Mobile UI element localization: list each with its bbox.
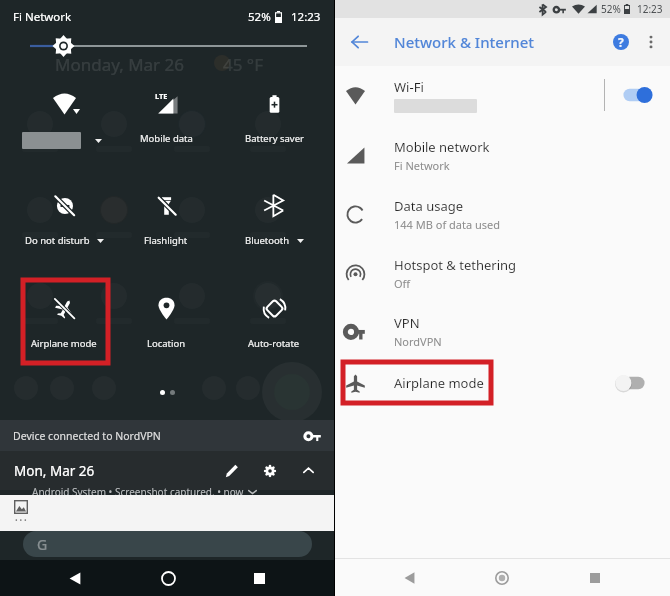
button[interactable]: Auto-rotate — [229, 277, 319, 363]
staticText: Monday, Mar 26 — [55, 53, 185, 76]
button[interactable]: Airplane mode — [19, 277, 109, 363]
button[interactable]: Settings — [258, 451, 282, 490]
staticText: NordVPN — [394, 334, 442, 349]
staticText: 12:23 — [291, 9, 321, 25]
button[interactable]: Back — [59, 560, 91, 596]
button[interactable]: Data usage — [335, 185, 670, 243]
button[interactable]: Help — [606, 18, 636, 66]
staticText: Mobile network — [394, 138, 490, 156]
button[interactable]: Wi-Fi switch — [612, 66, 656, 124]
staticText: Wi-Fi — [394, 78, 424, 96]
button[interactable]: Location — [121, 277, 211, 363]
staticText: LTE — [155, 91, 168, 101]
button[interactable]: Battery saver — [229, 72, 319, 158]
staticText: • • • — [15, 516, 27, 526]
staticText: Hotspot & tethering — [394, 256, 517, 274]
button[interactable]: Back — [345, 18, 373, 66]
button[interactable]: Mobile network — [335, 126, 670, 184]
staticText: G — [37, 535, 48, 554]
staticText: Flashlight — [144, 234, 188, 247]
staticText: 144 MB of data used — [394, 217, 500, 232]
staticText: Android System • Screenshot captured. • … — [32, 485, 244, 499]
staticText: Battery saver — [245, 132, 304, 145]
button[interactable]: Edit — [220, 451, 244, 490]
button[interactable]: VPN — [335, 302, 670, 360]
staticText: Fi Network — [13, 9, 72, 25]
staticText: Data usage — [394, 197, 464, 215]
button[interactable]: Wi-Fi — [19, 72, 109, 158]
staticText: Mobile data — [140, 132, 193, 145]
staticText: Device connected to NordVPN — [13, 429, 161, 443]
button[interactable]: Collapse — [296, 451, 320, 490]
staticText: Airplane mode — [394, 374, 484, 392]
staticText: 52% — [601, 2, 621, 16]
button[interactable]: More options — [638, 18, 664, 66]
button[interactable]: Recents — [243, 560, 275, 596]
button[interactable]: Airplane mode switch — [612, 354, 656, 412]
button[interactable]: Home — [486, 559, 518, 596]
staticText: ? — [618, 34, 624, 50]
staticText: Location — [147, 337, 186, 350]
staticText: Off — [394, 276, 411, 291]
staticText: 52% — [248, 9, 271, 25]
staticText: Bluetooth — [245, 234, 290, 247]
button[interactable]: Do not disturb — [19, 174, 109, 260]
button[interactable]: Hotspot & tethering — [335, 244, 670, 302]
button[interactable]: Bluetooth — [229, 174, 319, 260]
staticText: Do not disturb — [25, 234, 90, 247]
button[interactable]: Wi-Fi — [335, 66, 670, 124]
button[interactable]: Back — [393, 559, 425, 596]
staticText: Mon, Mar 26 — [14, 462, 95, 480]
staticText: Fi Network — [394, 158, 450, 173]
staticText: Network & Internet — [394, 32, 535, 52]
staticText: Auto-rotate — [248, 337, 300, 350]
button[interactable]: Device connected to NordVPN — [0, 420, 334, 451]
staticText: 45 °F — [223, 53, 263, 76]
button[interactable]: Airplane mode — [335, 354, 670, 412]
staticText: Airplane mode — [31, 337, 97, 350]
button[interactable]: Mobile data — [121, 72, 211, 158]
button[interactable]: Home — [152, 560, 184, 596]
button[interactable]: Flashlight — [121, 174, 211, 260]
staticText: 12:23 — [637, 2, 663, 16]
button[interactable]: Recents — [579, 559, 611, 596]
staticText: VPN — [394, 314, 420, 332]
button[interactable]: Search — [23, 531, 312, 557]
